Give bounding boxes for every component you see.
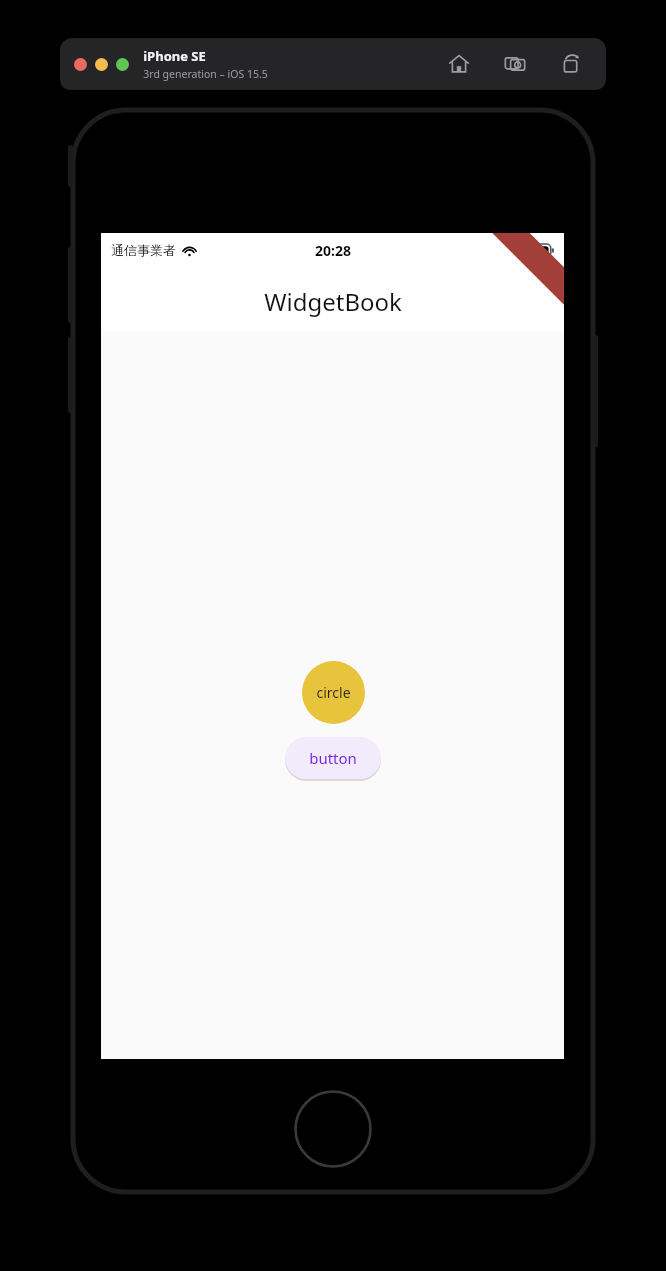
staticText: button	[309, 748, 357, 768]
button[interactable]: Close	[74, 58, 87, 71]
staticText: circle	[316, 683, 351, 702]
staticText: 3rd generation – iOS 15.5	[143, 67, 268, 81]
button[interactable]: Home	[444, 49, 474, 79]
staticText: WidgetBook	[264, 285, 402, 318]
staticText: iPhone SE	[143, 47, 206, 65]
staticText: DEBUG	[509, 256, 544, 290]
button[interactable]: Zoom	[116, 58, 129, 71]
staticText: 通信事業者	[111, 242, 176, 258]
staticText: 20:28	[315, 241, 351, 260]
button[interactable]: Home button	[294, 1090, 372, 1168]
button[interactable]: button	[285, 737, 381, 779]
button[interactable]: Screenshot	[500, 49, 530, 79]
button[interactable]: Minimise	[95, 58, 108, 71]
button[interactable]: circle	[302, 661, 365, 724]
button[interactable]: Rotate	[556, 49, 586, 79]
